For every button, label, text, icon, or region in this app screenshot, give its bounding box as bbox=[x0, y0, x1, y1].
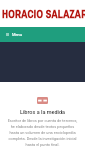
staticText: Menu bbox=[12, 32, 23, 37]
staticText: Escritor de libros por cuenta de tercero… bbox=[6, 118, 79, 147]
other: Libros a la medida bbox=[37, 97, 48, 104]
staticText: HORACIO SALAZAR bbox=[2, 7, 85, 21]
staticText: Libros a la medida bbox=[0, 109, 85, 115]
button[interactable]: Open menu bbox=[0, 27, 85, 42]
